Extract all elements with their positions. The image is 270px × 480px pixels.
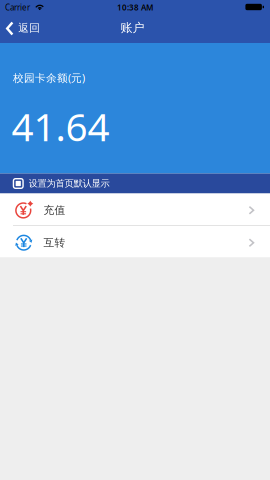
staticText: 互转 <box>43 236 65 249</box>
staticText: Carrier <box>5 2 30 13</box>
button[interactable]: 返回 <box>0 21 40 35</box>
staticText: 账户 <box>120 20 144 35</box>
staticText: 校园卡余额(元) <box>13 71 85 85</box>
button[interactable]: 设置为首页默认显示 <box>0 173 270 193</box>
button[interactable]: 互转 <box>0 226 270 257</box>
staticText: 返回 <box>18 21 40 34</box>
staticText: 10:38 AM <box>117 2 153 13</box>
button[interactable]: 充值 <box>0 193 270 225</box>
staticText: 设置为首页默认显示 <box>28 178 109 189</box>
staticText: 41.64 <box>11 100 109 152</box>
staticText: 充值 <box>43 204 65 217</box>
